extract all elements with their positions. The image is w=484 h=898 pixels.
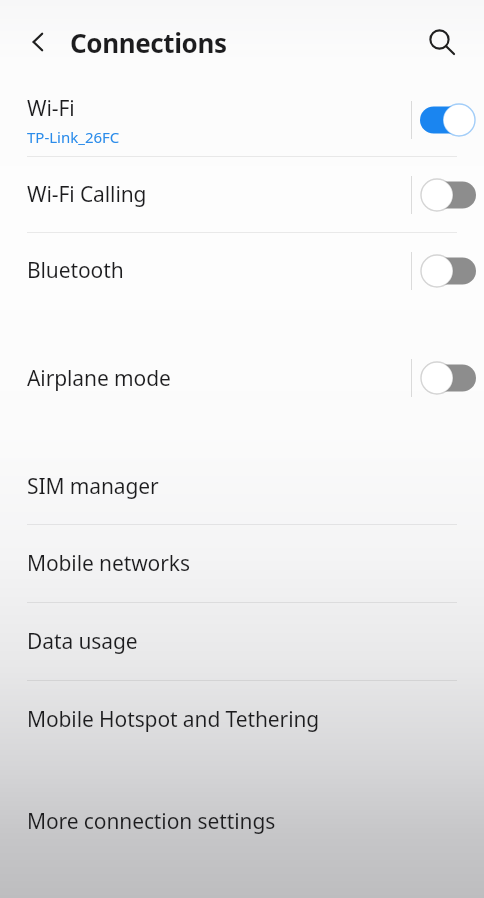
staticText: Mobile networks: [27, 549, 190, 578]
staticText: SIM manager: [27, 472, 159, 501]
button[interactable]: More connection settings: [0, 783, 484, 859]
staticText: Bluetooth: [27, 256, 124, 285]
button[interactable]: Data usage: [0, 603, 484, 680]
button[interactable]: Mobile networks: [0, 525, 484, 602]
button[interactable]: Airplane mode switch: [412, 336, 484, 420]
button[interactable]: Search: [419, 19, 465, 65]
button[interactable]: SIM manager: [0, 448, 484, 524]
button[interactable]: Wi-Fi: [0, 94, 411, 147]
staticText: Mobile Hotspot and Tethering: [27, 705, 320, 734]
staticText: Wi-Fi Calling: [27, 180, 147, 209]
button[interactable]: Bluetooth: [0, 256, 411, 285]
staticText: Airplane mode: [27, 364, 171, 393]
button[interactable]: Wi-Fi Calling switch: [412, 157, 484, 232]
staticText: Wi-Fi: [27, 94, 75, 123]
button[interactable]: Wi-Fi switch: [412, 84, 484, 156]
button[interactable]: Bluetooth switch: [412, 233, 484, 308]
button[interactable]: Back: [16, 20, 60, 64]
staticText: More connection settings: [27, 807, 276, 836]
button[interactable]: Wi-Fi Calling: [0, 180, 411, 209]
staticText: Connections: [70, 25, 227, 60]
staticText: TP-Link_26FC: [27, 127, 120, 147]
staticText: Data usage: [27, 627, 138, 656]
button[interactable]: Airplane mode: [0, 364, 411, 393]
button[interactable]: Mobile Hotspot and Tethering: [0, 681, 484, 757]
